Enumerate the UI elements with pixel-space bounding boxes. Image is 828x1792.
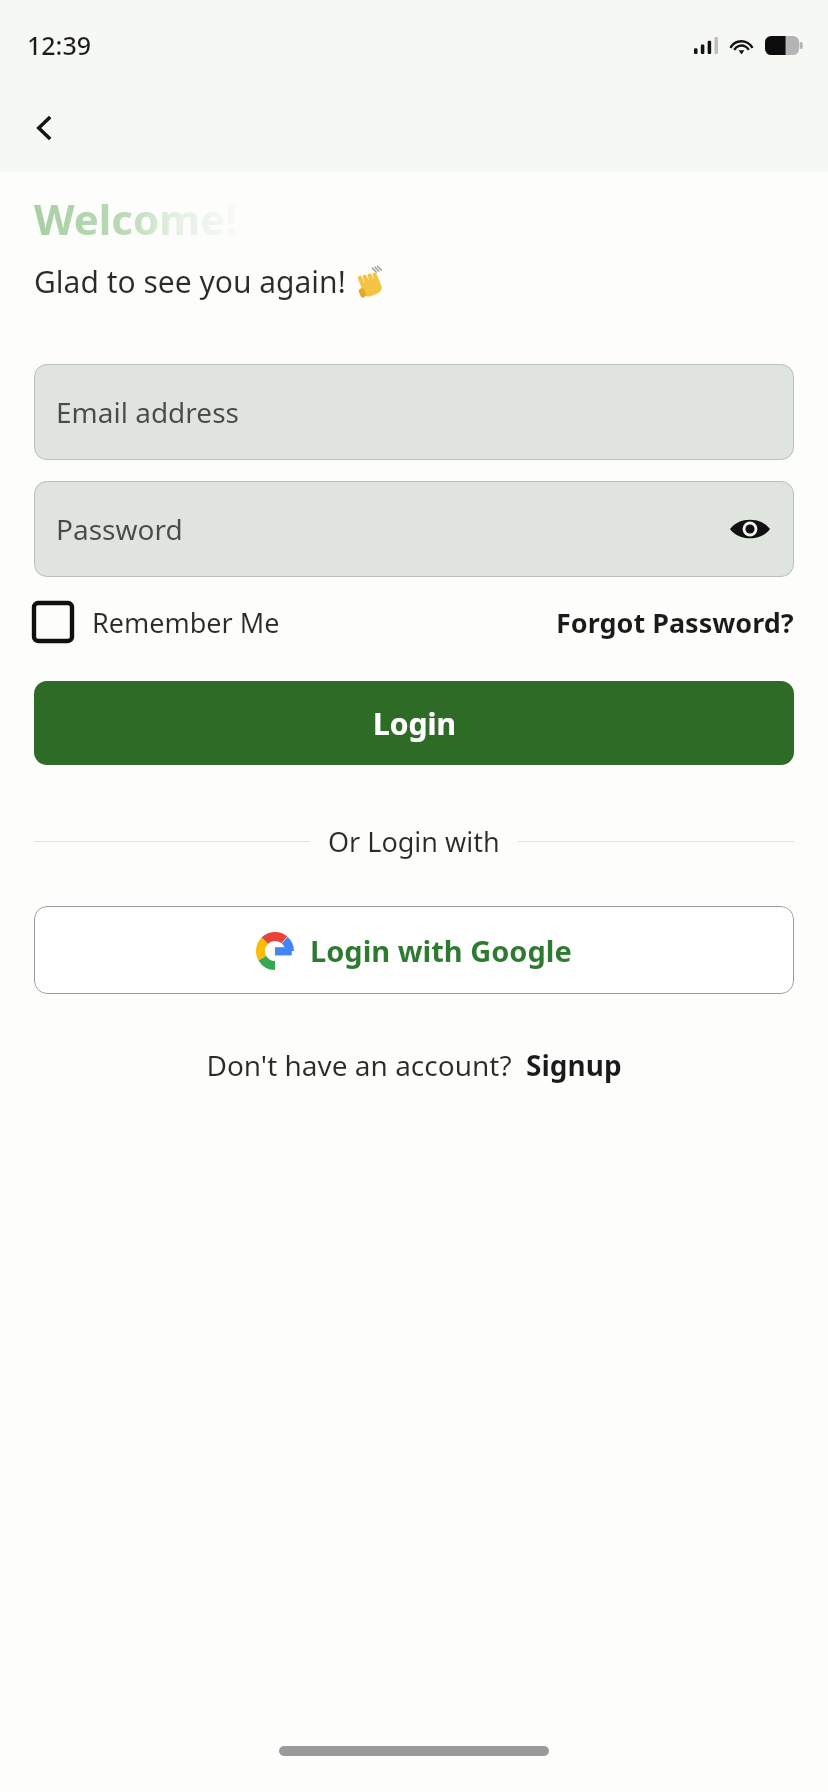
staticText: Password bbox=[56, 510, 183, 548]
staticText: Remember Me bbox=[92, 604, 280, 641]
staticText: 12:39 bbox=[27, 28, 92, 62]
button[interactable]: Remember Me bbox=[34, 603, 280, 641]
button[interactable]: Login bbox=[34, 681, 794, 765]
button[interactable]: Forgot Password? bbox=[556, 604, 794, 641]
staticText: Welcome! bbox=[34, 190, 238, 247]
staticText: Glad to see you again! bbox=[34, 261, 346, 302]
staticText: Login bbox=[373, 703, 456, 744]
staticText: Email address bbox=[56, 393, 239, 431]
button[interactable]: Email address bbox=[34, 364, 794, 460]
staticText: Login with Google bbox=[310, 931, 572, 970]
button[interactable]: Back bbox=[16, 99, 74, 157]
staticText: Don't have an account? bbox=[206, 1046, 512, 1084]
button[interactable]: Password bbox=[34, 481, 794, 577]
button[interactable]: Login with Google bbox=[34, 906, 794, 994]
staticText: Forgot Password? bbox=[556, 604, 794, 641]
staticText: Or Login with bbox=[328, 823, 500, 860]
staticText: Signup bbox=[526, 1046, 622, 1084]
button[interactable]: Show password bbox=[722, 501, 778, 557]
button[interactable]: Signup bbox=[526, 1046, 622, 1084]
